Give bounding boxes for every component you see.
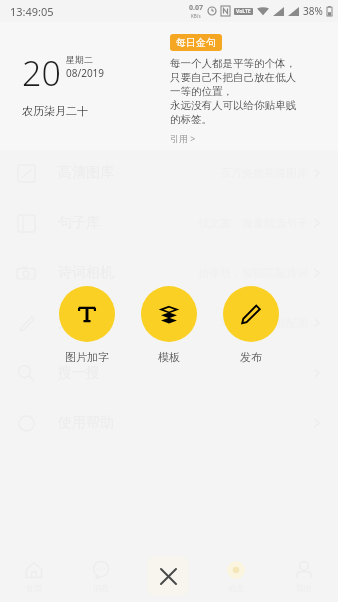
staticText: 每一个人都是平等的个体， 只要自己不把自己放在低人 一等的位置， 永远没有人可以… [170,57,296,127]
staticText: 发布 [240,350,262,364]
button[interactable]: 图片加字 [59,286,115,364]
staticText: 38% [303,4,323,18]
button[interactable]: 模板 [141,286,197,364]
other: 图片加字 [76,303,98,325]
staticText: 写句话，智能配图 [220,316,308,330]
staticText: 星期二 [66,54,93,65]
staticText: 图片加字 [65,350,109,364]
button[interactable]: 引用 > [170,132,196,144]
staticText: 20 [22,50,61,96]
staticText: 每日金句 [176,36,216,49]
button[interactable]: 发布 [223,286,279,364]
staticText: 发现 [155,24,183,42]
staticText: 模板 [158,350,180,364]
other: 模板 [158,303,180,325]
staticText: 文字海报 [58,314,114,332]
other: 发布 [240,303,262,325]
button[interactable]: 关闭 [147,556,189,596]
staticText: 13:49:05 [10,4,54,19]
button[interactable]: 每日金句 [170,34,222,51]
staticText: 08/2019 [66,66,105,80]
staticText: 0.07 [189,3,203,13]
staticText: VoLTE [236,8,251,15]
staticText: KB/s [191,13,201,19]
button[interactable]: 动态 [202,550,270,602]
staticText: 农历柒月二十 [22,104,88,118]
